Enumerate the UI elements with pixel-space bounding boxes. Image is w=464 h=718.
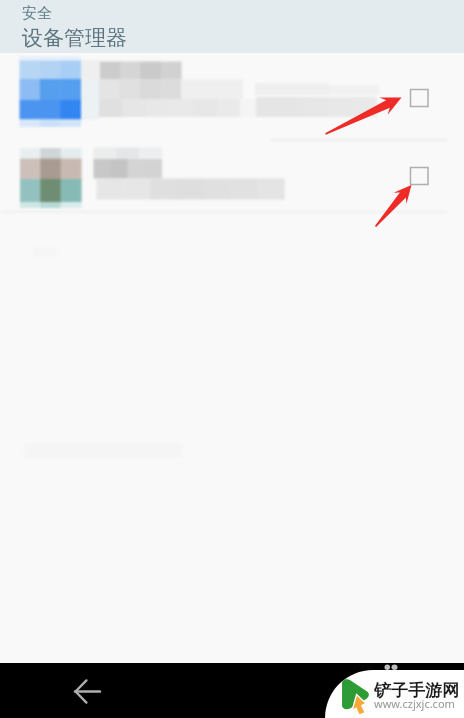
staticText: 铲子手游网	[374, 680, 459, 701]
button[interactable]: Back	[64, 668, 110, 714]
staticText: 设备管理器	[22, 25, 127, 51]
button[interactable]: Select device	[0, 140, 464, 211]
button[interactable]: Select device	[408, 71, 448, 111]
staticText: 安全	[22, 4, 52, 23]
staticText: www.czjxjc.com	[374, 696, 455, 711]
button[interactable]: Select device	[0, 53, 464, 140]
button[interactable]: Select device	[408, 154, 448, 194]
